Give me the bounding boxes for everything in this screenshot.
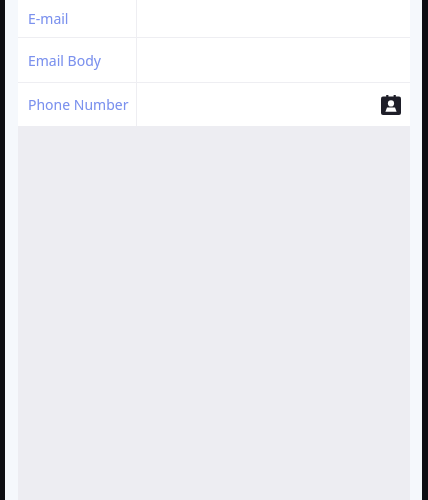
button[interactable]: Phone Number — [18, 83, 410, 126]
staticText: Phone Number — [28, 95, 129, 114]
button[interactable]: Pick contact — [376, 90, 406, 120]
button[interactable]: E-mail — [18, 0, 410, 37]
staticText: Email Body — [28, 51, 101, 70]
button[interactable]: Email Body — [18, 38, 410, 82]
staticText: E-mail — [28, 9, 69, 28]
